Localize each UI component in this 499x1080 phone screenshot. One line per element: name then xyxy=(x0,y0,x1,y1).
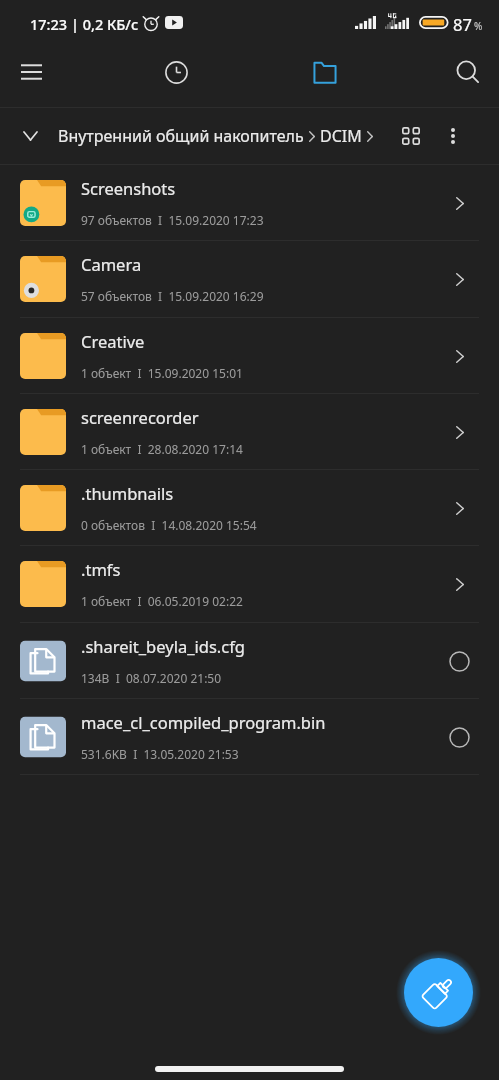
button[interactable]: Files xyxy=(302,49,348,95)
button[interactable]: Open folder xyxy=(436,180,482,226)
staticText: .thumbnails xyxy=(81,482,174,504)
staticText: Внутренний общий накопитель xyxy=(58,125,304,147)
button[interactable]: Menu xyxy=(6,47,56,97)
button[interactable]: Open folder xyxy=(436,333,482,379)
staticText: 134B I 08.07.2020 21:50 xyxy=(81,670,222,686)
button[interactable]: Open folder xyxy=(436,409,482,455)
staticText: Screenshots xyxy=(81,177,176,199)
staticText: 0 объектов I 14.08.2020 15:54 xyxy=(81,517,257,533)
button[interactable]: More options xyxy=(431,112,474,160)
button[interactable]: .tmfs xyxy=(0,546,499,621)
button[interactable]: Screenshots xyxy=(0,165,499,240)
staticText: .tmfs xyxy=(81,558,121,580)
staticText: Camera xyxy=(81,253,142,275)
button[interactable]: Select file xyxy=(436,638,482,684)
staticText: 531.6KB I 13.05.2020 21:53 xyxy=(81,746,239,762)
button[interactable]: Camera xyxy=(0,241,499,316)
button[interactable]: Open folder xyxy=(436,485,482,531)
staticText: screenrecorder xyxy=(81,406,199,428)
staticText: % xyxy=(474,19,483,33)
staticText: 1 объект I 28.08.2020 17:14 xyxy=(81,441,243,457)
staticText: DCIM xyxy=(320,125,362,147)
button[interactable]: Grid view xyxy=(389,112,432,160)
button[interactable]: screenrecorder xyxy=(0,394,499,469)
button[interactable]: Recent xyxy=(153,49,199,95)
button[interactable]: Внутренний общий накопитель xyxy=(50,112,379,160)
staticText: 17:23 | 0,2 КБ/с xyxy=(30,14,139,34)
button[interactable]: Expand path xyxy=(8,114,52,158)
staticText: 1 объект I 06.05.2019 02:22 xyxy=(81,593,243,609)
button[interactable]: Open folder xyxy=(436,256,482,302)
staticText: mace_cl_compiled_program.bin xyxy=(81,711,326,733)
button[interactable]: Select file xyxy=(436,714,482,760)
staticText: 97 объектов I 15.09.2020 17:23 xyxy=(81,212,264,228)
button[interactable]: .thumbnails xyxy=(0,470,499,545)
staticText: 57 объектов I 15.09.2020 16:29 xyxy=(81,288,264,304)
staticText: 87 xyxy=(453,13,472,35)
button[interactable]: mace_cl_compiled_program.bin xyxy=(0,699,499,774)
staticText: .shareit_beyla_ids.cfg xyxy=(81,635,245,657)
button[interactable]: .shareit_beyla_ids.cfg xyxy=(0,623,499,698)
staticText: 1 объект I 15.09.2020 15:01 xyxy=(81,365,243,381)
staticText: Creative xyxy=(81,330,145,352)
button[interactable]: Search xyxy=(445,49,491,95)
button[interactable]: Clean up xyxy=(404,958,473,1027)
button[interactable]: Open folder xyxy=(436,561,482,607)
button[interactable]: Creative xyxy=(0,318,499,393)
